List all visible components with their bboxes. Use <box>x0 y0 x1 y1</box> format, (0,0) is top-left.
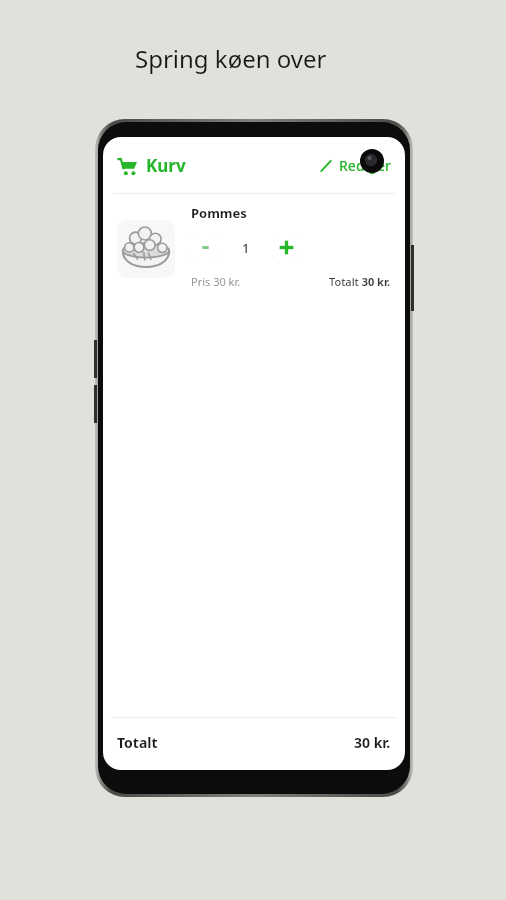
staticText: Totalt <box>117 733 158 752</box>
staticText: Kurv <box>146 154 186 177</box>
staticText: Pris 30 kr. <box>191 274 241 289</box>
button[interactable]: Pommes <box>117 204 391 289</box>
staticText: Spring køen over <box>135 42 327 75</box>
staticText: Rediger <box>339 156 391 175</box>
button[interactable]: Decrease quantity <box>191 233 220 262</box>
staticText: 1 <box>242 239 250 257</box>
button[interactable]: Kurv <box>117 154 186 177</box>
staticText: Totalt 30 kr. <box>329 274 391 289</box>
button[interactable]: Rediger <box>319 156 391 175</box>
button[interactable]: Increase quantity <box>272 233 301 262</box>
staticText: 30 kr. <box>354 733 391 752</box>
staticText: Pommes <box>191 204 247 222</box>
